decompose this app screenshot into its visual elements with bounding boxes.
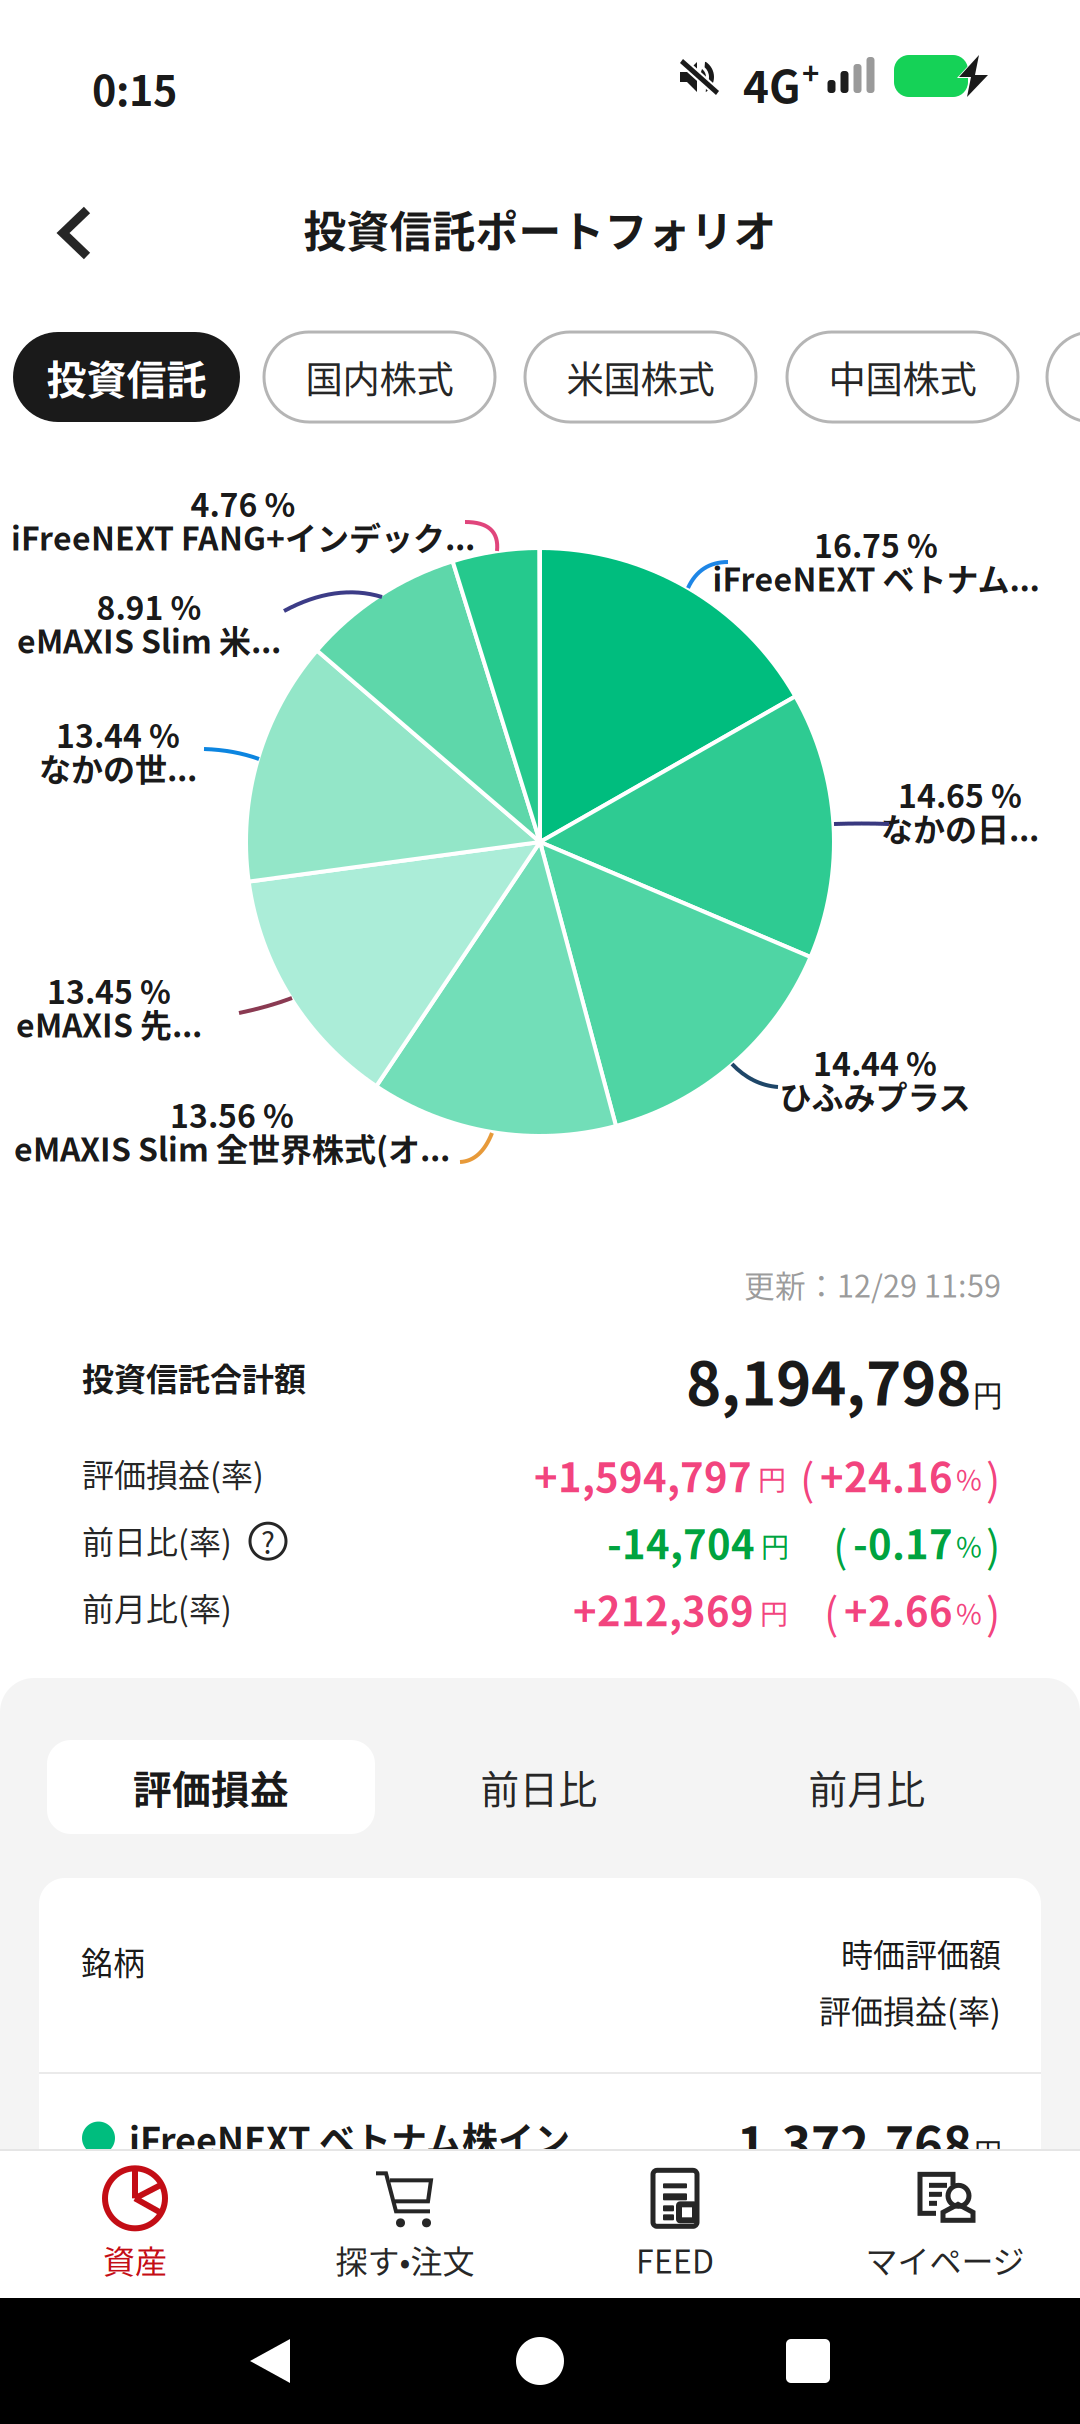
staticText: ) — [986, 1446, 1000, 1508]
button[interactable]: マイページ — [810, 2151, 1080, 2298]
staticText: % — [956, 1592, 982, 1633]
staticText: -14,704 — [607, 1513, 755, 1571]
staticText: なかの世... — [39, 744, 197, 791]
staticText: 0:15 — [92, 58, 177, 118]
staticText: 評価損益(率) — [82, 1450, 264, 1496]
staticText: 円 — [973, 1372, 1002, 1415]
staticText: ) — [986, 1513, 1000, 1575]
staticText: なかの日... — [881, 804, 1039, 851]
staticText: 投資信託 — [46, 348, 206, 406]
staticText: 13.44 % — [56, 711, 180, 757]
staticText: 16.75 % — [814, 521, 938, 567]
staticText: 中国株式 — [828, 350, 976, 404]
staticText: ひふみプラス — [779, 1072, 970, 1119]
staticText: iFreeNEXT FANG+インデック... — [11, 513, 475, 560]
button[interactable]: 評価損益 — [47, 1740, 375, 1834]
staticText: 更新： — [744, 1262, 837, 1306]
button[interactable]: 戻る — [27, 181, 123, 285]
staticText: 前月比(率) — [82, 1584, 232, 1630]
staticText: eMAXIS 先... — [16, 1000, 202, 1047]
staticText: 米国株式 — [566, 350, 714, 404]
staticText: 評価損益(率) — [819, 1986, 1001, 2033]
staticText: 1,372,768 — [737, 2106, 972, 2177]
staticText: % — [956, 1458, 982, 1499]
button[interactable]: FEED — [540, 2151, 810, 2298]
staticText: 円 — [761, 1525, 789, 1566]
staticText: 国内株式 — [305, 350, 453, 404]
staticText: 8.91 % — [96, 583, 201, 629]
staticText: 円 — [760, 1592, 788, 1633]
staticText: 13.45 % — [47, 967, 171, 1013]
button[interactable]: その他 — [1047, 332, 1080, 422]
button[interactable]: 前月比 — [703, 1740, 1031, 1834]
staticText: 探す•注文 — [335, 2236, 474, 2283]
staticText: ) — [986, 1580, 1000, 1642]
staticText: 投資信託合計額 — [82, 1354, 306, 1400]
staticText: 評価損益 — [133, 1759, 289, 1815]
staticText: 前日比 — [480, 1759, 597, 1815]
staticText: 13.56 % — [170, 1091, 294, 1137]
staticText: 4.76 % — [190, 480, 295, 526]
staticText: -0.17 — [853, 1513, 953, 1571]
staticText: eMAXIS Slim 全世界株式(オ... — [14, 1124, 450, 1171]
staticText: 14.44 % — [813, 1039, 937, 1085]
staticText: +2.66 — [844, 1580, 953, 1638]
staticText: 8,194,798 — [686, 1336, 971, 1423]
button[interactable]: 資産 — [0, 2151, 270, 2298]
staticText: iFreeNEXT ベトナム... — [712, 554, 1039, 601]
staticText: ( — [824, 1580, 838, 1642]
staticText: % — [956, 1525, 982, 1566]
button[interactable]: 国内株式 — [264, 332, 495, 422]
staticText: 銘柄 — [81, 1938, 145, 1984]
staticText: eMAXIS Slim 米... — [17, 616, 281, 663]
staticText: ( — [833, 1513, 847, 1575]
staticText: 14.65 % — [898, 771, 1022, 817]
button[interactable]: 投資信託 — [13, 332, 240, 422]
button[interactable]: 前日比 — [375, 1740, 703, 1834]
staticText: +212,369 — [573, 1580, 754, 1638]
staticText: 前日比(率) — [82, 1517, 232, 1563]
staticText: 円 — [974, 2131, 1002, 2171]
staticText: ? — [261, 1520, 275, 1562]
staticText: +1,594,797 — [534, 1446, 752, 1504]
button[interactable]: 中国株式 — [787, 332, 1018, 422]
staticText: +24.16 — [820, 1446, 953, 1504]
staticText: ( — [800, 1446, 814, 1508]
staticText: 資産 — [103, 2236, 167, 2283]
staticText: FEED — [636, 2236, 714, 2283]
button[interactable]: 米国株式 — [525, 332, 756, 422]
staticText: 前月比 — [808, 1759, 925, 1815]
staticText: + — [802, 50, 819, 92]
staticText: 時価評価額 — [841, 1930, 1001, 1976]
staticText: iFreeNEXT ベトナム株イン — [129, 2112, 570, 2164]
staticText: 12/29 11:59 — [837, 1262, 1001, 1306]
button[interactable]: 探す•注文 — [270, 2151, 540, 2298]
staticText: 円 — [758, 1458, 786, 1499]
staticText: 投資信託ポートフォリオ — [303, 198, 776, 260]
staticText: マイページ — [865, 2236, 1024, 2283]
staticText: 4G — [743, 52, 801, 116]
